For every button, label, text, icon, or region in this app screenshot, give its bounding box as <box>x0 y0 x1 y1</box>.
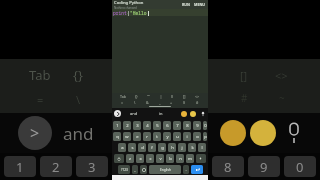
staticText: = <box>121 100 124 105</box>
button[interactable]: l <box>198 143 206 152</box>
button[interactable]: _ <box>158 100 162 105</box>
staticText: "" <box>147 94 150 99</box>
button[interactable]: \ <box>133 100 137 105</box>
staticText: ?123 <box>121 168 128 172</box>
button[interactable]: Emoji smile <box>190 111 196 117</box>
button[interactable]: Expand toolbar <box>114 110 121 117</box>
staticText: u <box>176 134 179 140</box>
button[interactable]: 8 <box>183 121 191 130</box>
staticText: 2 <box>126 123 129 129</box>
button[interactable]: {} <box>134 94 139 99</box>
staticText: + <box>170 100 173 105</box>
button[interactable]: 4 <box>143 121 151 130</box>
button[interactable]: 0 <box>203 121 207 130</box>
button[interactable]: u <box>173 132 181 141</box>
button[interactable]: k <box>188 143 196 152</box>
button[interactable]: Voice input <box>199 110 206 117</box>
staticText: 9 <box>196 123 199 129</box>
staticText: Tab <box>29 66 51 84</box>
button[interactable]: x <box>136 154 144 163</box>
staticText: 9 <box>260 158 268 176</box>
staticText: z <box>129 156 131 162</box>
button[interactable]: g <box>158 143 166 152</box>
button[interactable]: in <box>156 111 166 116</box>
button[interactable]: c <box>146 154 154 163</box>
button[interactable]: b <box>166 154 174 163</box>
staticText: w <box>125 134 129 140</box>
button[interactable]: y <box>163 132 171 141</box>
staticText: <> <box>195 94 200 99</box>
button[interactable]: . <box>183 165 189 174</box>
button[interactable]: o <box>193 132 201 141</box>
button[interactable]: Emoji wave <box>181 111 187 117</box>
staticText: $ <box>183 100 186 105</box>
staticText: f <box>151 145 153 151</box>
staticText: # <box>241 91 248 105</box>
staticText: in <box>159 111 163 116</box>
staticText: Tab <box>120 94 126 99</box>
staticText: y <box>166 134 169 140</box>
button[interactable]: and <box>127 111 141 116</box>
button[interactable]: 3 <box>133 121 141 130</box>
button[interactable]: = <box>120 100 125 105</box>
staticText: l <box>201 145 203 151</box>
button[interactable]: + <box>169 100 174 105</box>
staticText: 3 <box>136 123 139 129</box>
button[interactable]: n <box>176 154 184 163</box>
staticText: & <box>146 100 149 105</box>
staticText: d <box>141 145 144 151</box>
button[interactable]: , <box>132 165 138 174</box>
button[interactable]: m <box>186 154 194 163</box>
staticText: 2 <box>52 158 60 176</box>
button[interactable]: s <box>128 143 136 152</box>
staticText: , <box>134 167 136 173</box>
button[interactable]: "" <box>146 94 151 99</box>
button[interactable]: Key <box>114 154 124 163</box>
button[interactable]: 6 <box>163 121 171 130</box>
button[interactable]: t <box>153 132 161 141</box>
staticText: s <box>131 145 134 151</box>
button[interactable]: j <box>178 143 186 152</box>
staticText: [] <box>183 94 186 99</box>
button[interactable]: z <box>126 154 134 163</box>
button[interactable]: v <box>156 154 164 163</box>
button[interactable]: 7 <box>173 121 181 130</box>
button[interactable]: # <box>195 100 200 105</box>
button[interactable]: | <box>159 94 163 99</box>
staticText: \ <box>76 92 81 107</box>
button[interactable]: i <box>183 132 191 141</box>
staticText: {} <box>73 66 83 84</box>
button[interactable]: 2 <box>123 121 131 130</box>
button[interactable]: 9 <box>193 121 201 130</box>
button[interactable]: f <box>148 143 156 152</box>
button[interactable]: RUN <box>180 2 192 7</box>
button[interactable]: & <box>145 100 150 105</box>
staticText: | <box>160 94 162 99</box>
button[interactable]: [] <box>182 94 187 99</box>
button[interactable]: 5 <box>153 121 161 130</box>
button[interactable]: r <box>143 132 151 141</box>
button[interactable]: Key <box>140 165 147 174</box>
staticText: x <box>139 156 142 162</box>
button[interactable]: () <box>170 94 175 99</box>
button[interactable]: p <box>203 132 207 141</box>
button[interactable]: English <box>149 165 181 174</box>
button[interactable]: $ <box>182 100 187 105</box>
button[interactable]: h <box>168 143 176 152</box>
staticText: # <box>196 100 199 105</box>
button[interactable]: e <box>133 132 141 141</box>
staticText: ~ <box>279 91 285 105</box>
button[interactable]: q <box>113 132 121 141</box>
button[interactable]: 1 <box>113 121 121 130</box>
staticText: {} <box>135 94 138 99</box>
button[interactable]: ?123 <box>118 165 130 174</box>
button[interactable]: <> <box>194 94 201 99</box>
button[interactable]: d <box>138 143 146 152</box>
staticText: Coding Python <box>114 0 144 6</box>
button[interactable]: Tab <box>119 94 127 99</box>
button[interactable]: Key <box>196 154 206 163</box>
button[interactable]: w <box>123 132 131 141</box>
button[interactable]: Key <box>191 165 203 174</box>
button[interactable]: MENU <box>192 2 206 7</box>
button[interactable]: a <box>118 143 126 152</box>
